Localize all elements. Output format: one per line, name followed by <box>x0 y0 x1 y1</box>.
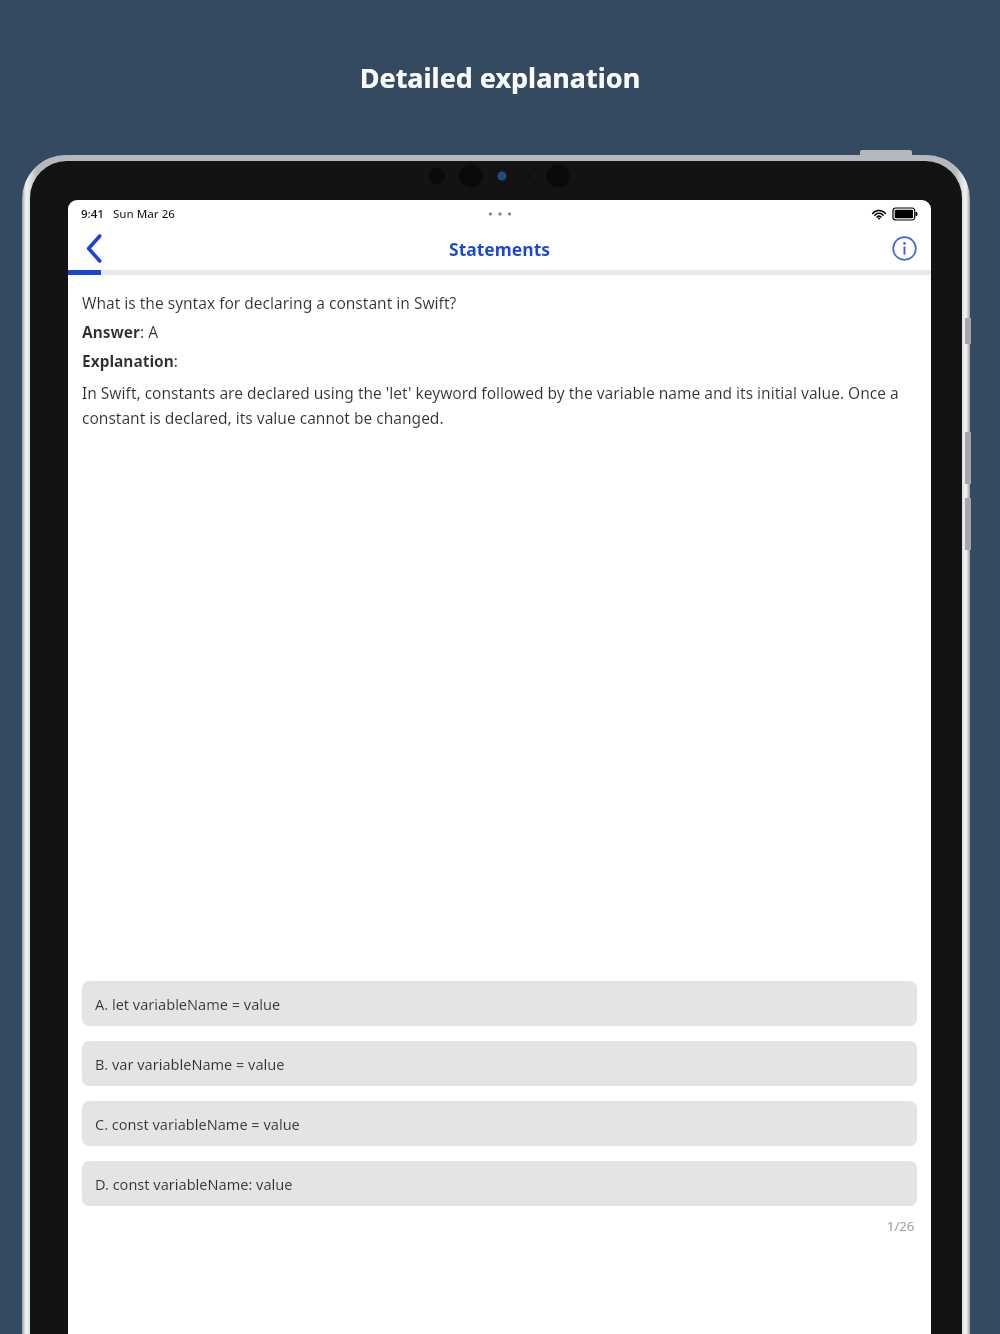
staticText: B. var variableName = value <box>95 1054 285 1074</box>
staticText: C. const variableName = value <box>95 1114 300 1134</box>
button[interactable]: B. var variableName = value <box>82 1041 917 1086</box>
staticText: Sun Mar 26 <box>113 206 175 222</box>
staticText: Detailed explanation <box>0 59 1000 96</box>
button[interactable]: C. const variableName = value <box>82 1101 917 1146</box>
staticText: Answer: A <box>82 321 159 342</box>
staticText: D. const variableName: value <box>95 1174 293 1194</box>
button[interactable]: Back <box>68 227 122 270</box>
staticText: Explanation: <box>82 350 178 371</box>
staticText: Statements <box>449 237 551 261</box>
staticText: In Swift, constants are declared using t… <box>82 382 917 428</box>
staticText: What is the syntax for declaring a const… <box>82 292 457 313</box>
button[interactable]: A. let variableName = value <box>82 981 917 1026</box>
staticText: 9:41 <box>81 206 104 222</box>
button[interactable]: Information <box>877 227 931 270</box>
button[interactable]: D. const variableName: value <box>82 1161 917 1206</box>
staticText: A. let variableName = value <box>95 994 281 1014</box>
staticText: 1/26 <box>887 1217 915 1235</box>
